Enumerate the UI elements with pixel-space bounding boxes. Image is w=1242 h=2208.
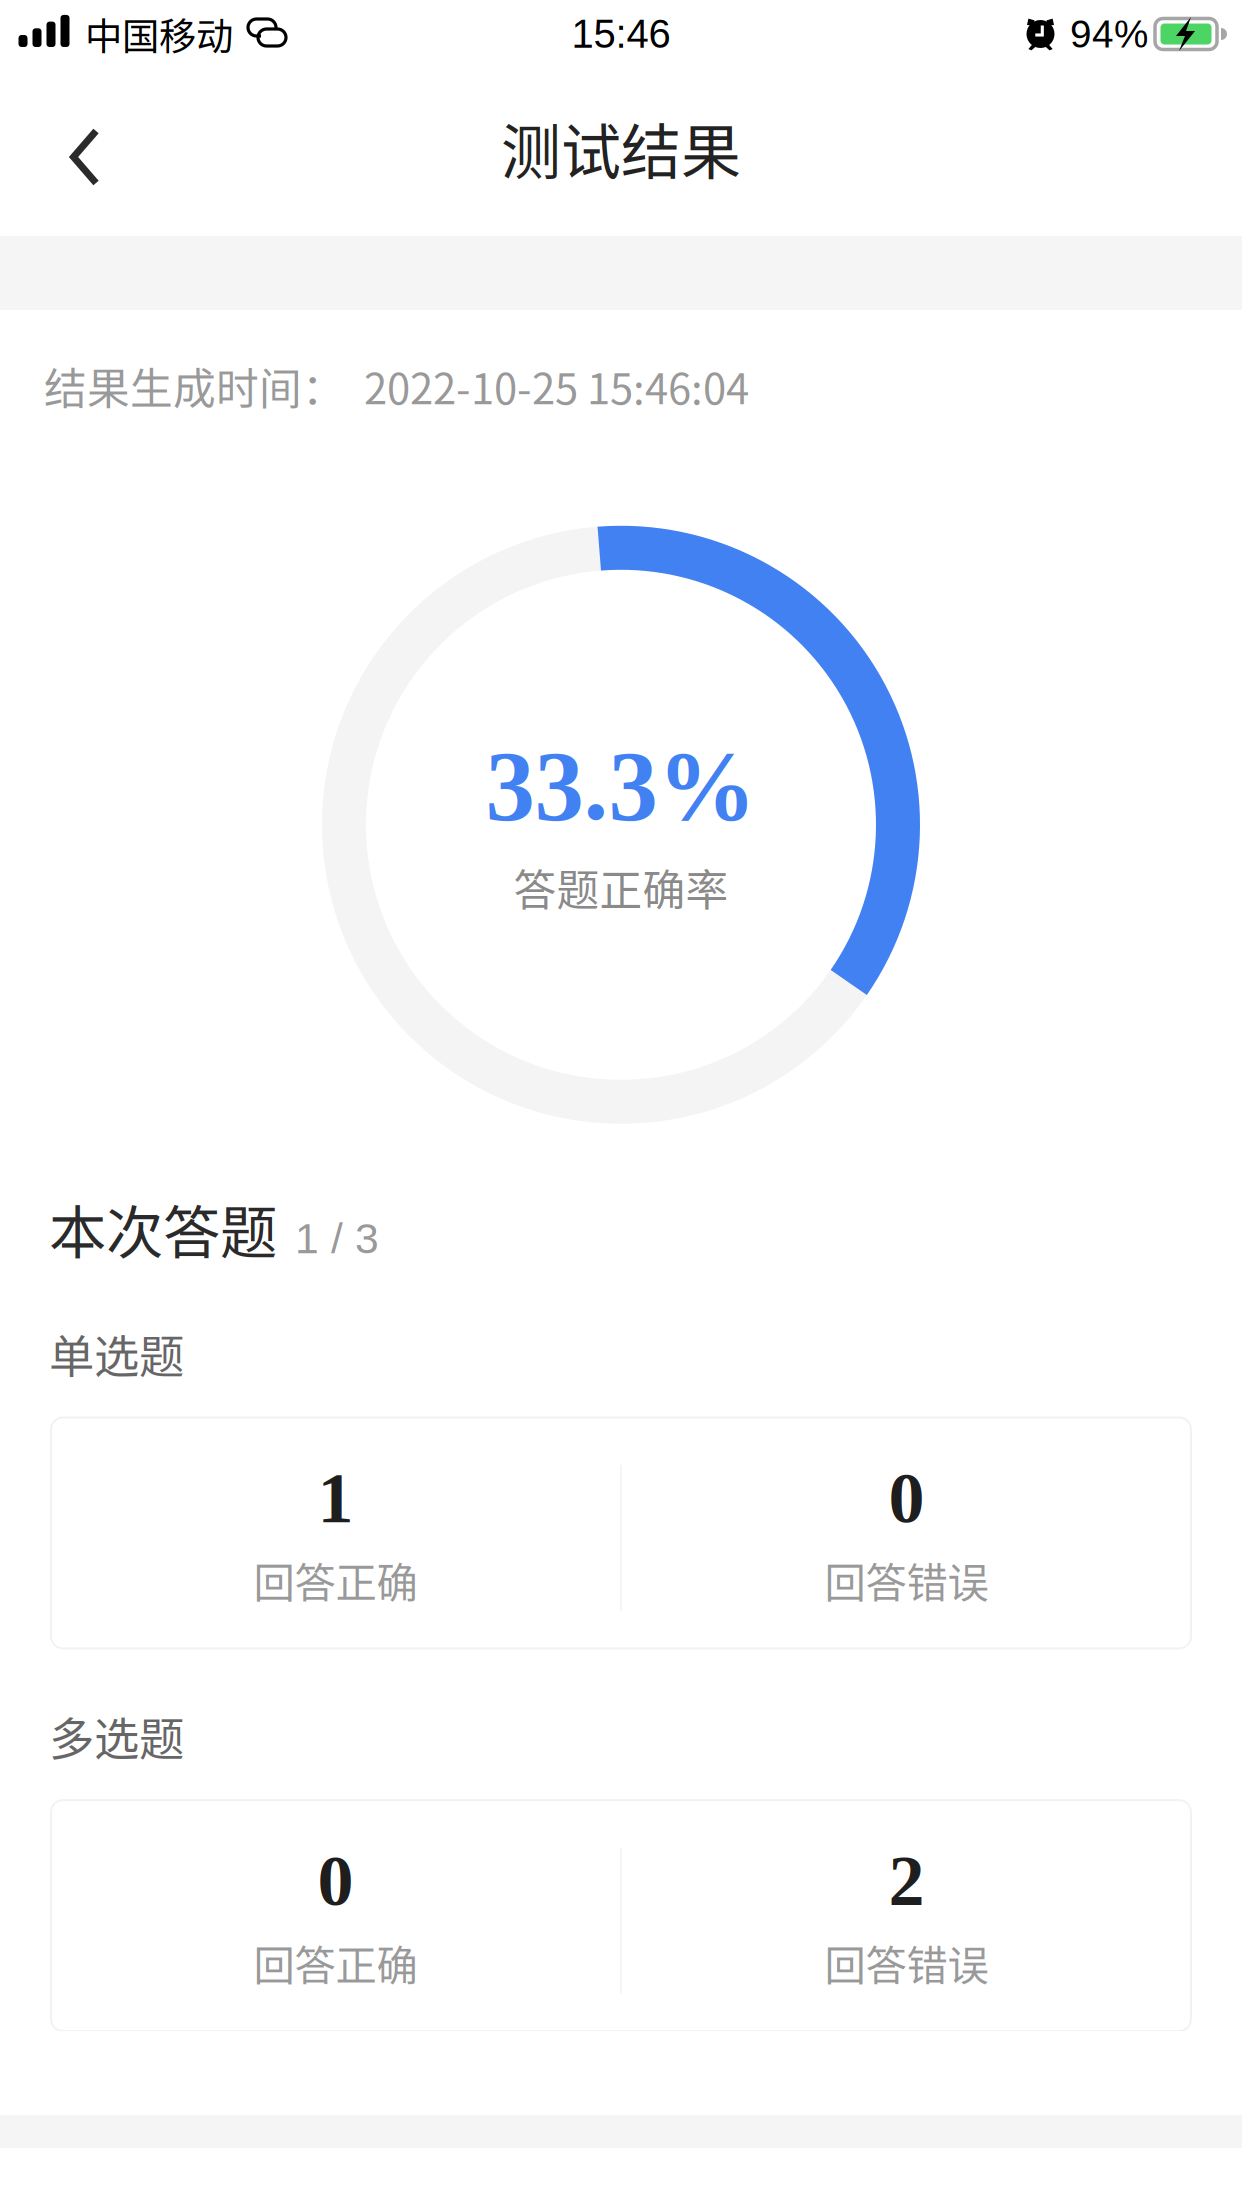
staticText: 2022-10-25 15:46:04 <box>364 356 749 416</box>
staticText: 单选题 <box>49 1321 184 1386</box>
staticText: 回答正确 <box>254 1550 418 1610</box>
staticText: 多选题 <box>49 1703 184 1769</box>
staticText: 0 <box>318 1841 354 1920</box>
staticText: 中国移动 <box>85 7 233 61</box>
staticText: 回答正确 <box>254 1932 418 1992</box>
staticText: 回答错误 <box>824 1932 988 1992</box>
staticText: 1 / 3 <box>295 1215 379 1262</box>
staticText: 1 <box>318 1458 354 1538</box>
staticText: 15:46 <box>571 12 670 56</box>
staticText: 答题正确率 <box>513 856 728 918</box>
staticText: 本次答题 <box>49 1187 277 1270</box>
staticText: 2 <box>888 1841 924 1920</box>
staticText: 测试结果 <box>501 105 741 191</box>
staticText: 结果生成时间： <box>44 355 345 417</box>
staticText: 回答错误 <box>824 1550 988 1610</box>
staticText: 33.3% <box>485 731 756 841</box>
staticText: 94% <box>1070 12 1148 56</box>
button[interactable]: Back <box>0 82 147 221</box>
staticText: 0 <box>888 1458 924 1538</box>
